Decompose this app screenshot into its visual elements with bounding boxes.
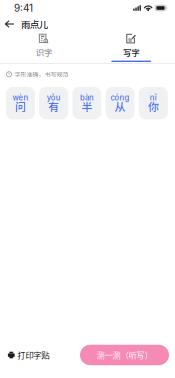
button[interactable]: 写字 [87, 32, 175, 63]
staticText: 问 [15, 98, 26, 114]
staticText: wèn [12, 93, 28, 102]
staticText: 测一测（听写） [96, 349, 152, 361]
staticText: nǐ [150, 93, 157, 102]
staticText: cóng [111, 93, 130, 102]
staticText: 半 [81, 98, 92, 114]
staticText: bàn [80, 93, 94, 102]
staticText: 写字 [123, 46, 139, 58]
button[interactable]: cóng [106, 87, 135, 119]
button[interactable]: Back [0, 16, 18, 32]
staticText: 字形准确，书写规范 [14, 70, 68, 79]
staticText: 从 [115, 98, 126, 114]
button[interactable]: yǒu [39, 87, 68, 119]
staticText: 9:41 [14, 2, 33, 14]
button[interactable]: nǐ [139, 87, 168, 119]
button[interactable]: 识字 [0, 32, 87, 63]
staticText: yǒu [47, 93, 61, 102]
staticText: 打印字贴 [18, 349, 50, 361]
staticText: 识字 [36, 46, 52, 58]
staticText: 有 [48, 98, 59, 114]
button[interactable]: wèn [6, 87, 35, 119]
button[interactable]: bàn [72, 87, 101, 119]
button[interactable]: 打印字贴 [0, 343, 50, 367]
button[interactable]: 测一测（听写） [80, 345, 169, 365]
staticText: 雨点儿 [21, 17, 48, 31]
staticText: 你 [148, 98, 159, 114]
